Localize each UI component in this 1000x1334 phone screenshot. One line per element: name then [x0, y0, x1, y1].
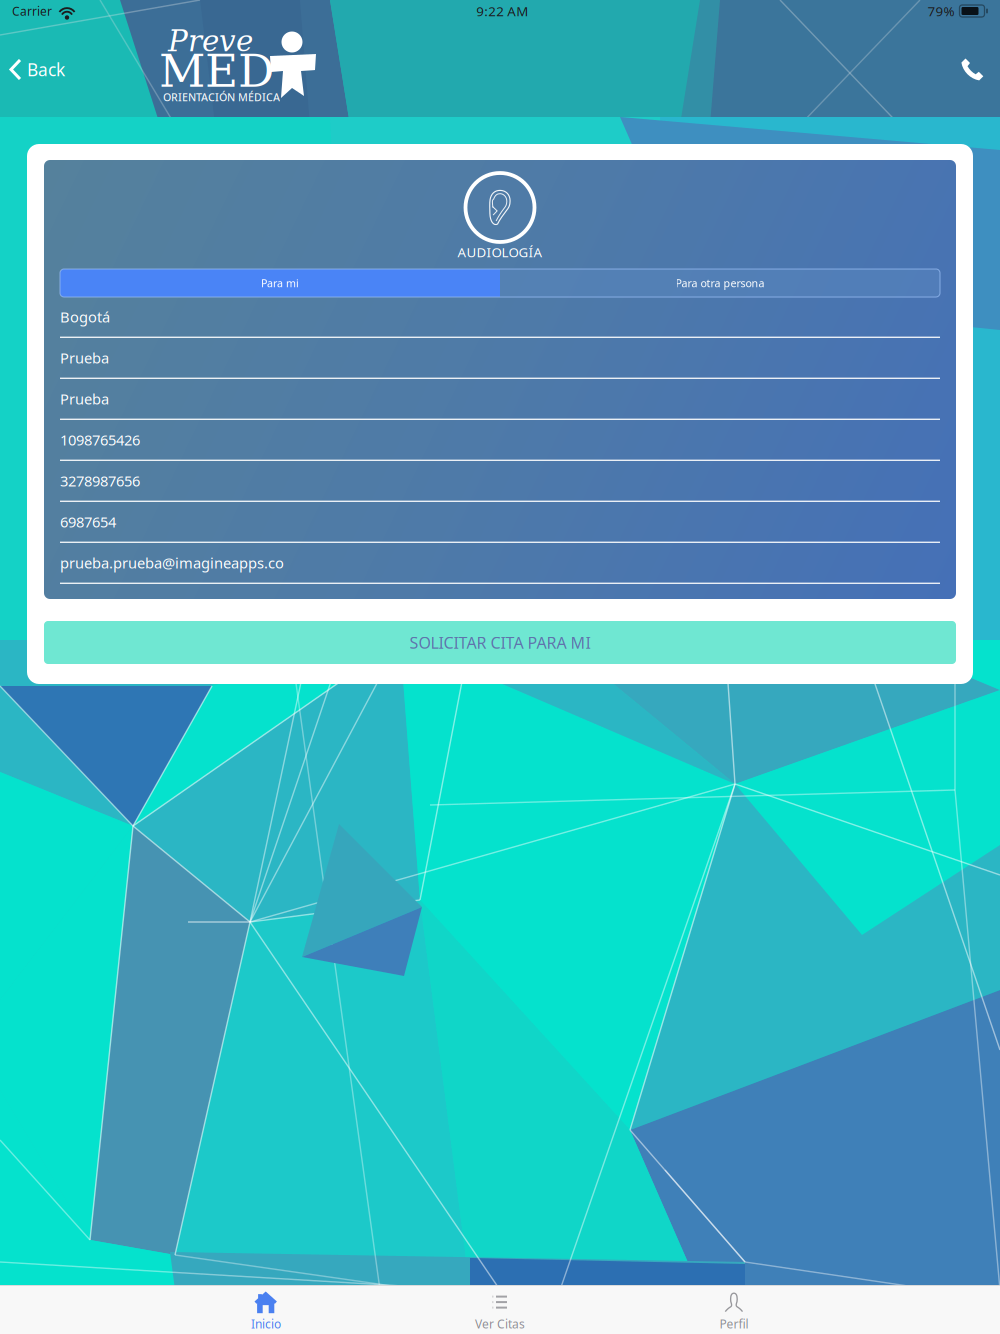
staticText: Bogotá: [60, 307, 110, 327]
staticText: AUDIOLOGÍA: [457, 243, 542, 261]
button[interactable]: Inicio: [149, 1286, 383, 1334]
button[interactable]: Llamar: [961, 22, 1000, 117]
button[interactable]: Ver Citas: [383, 1286, 617, 1334]
button[interactable]: Para otra persona: [500, 269, 940, 297]
staticText: Para mi: [261, 276, 299, 290]
button[interactable]: Perfil: [617, 1286, 851, 1334]
staticText: Para otra persona: [675, 276, 764, 290]
staticText: Ver Citas: [475, 1316, 525, 1332]
staticText: Back: [27, 58, 65, 81]
staticText: 6987654: [60, 512, 116, 532]
staticText: Inicio: [251, 1316, 281, 1332]
staticText: ORIENTACIÓN MÉDICA: [163, 90, 280, 104]
staticText: 1098765426: [60, 430, 140, 450]
staticText: prueba.prueba@imagineapps.co: [60, 553, 284, 573]
staticText: Prueba: [60, 348, 109, 368]
staticText: Perfil: [719, 1316, 748, 1332]
button[interactable]: Back: [0, 22, 81, 117]
staticText: MED: [159, 45, 274, 97]
staticText: Preve: [168, 24, 253, 58]
staticText: Prueba: [60, 389, 109, 409]
staticText: 79%: [927, 2, 954, 20]
button[interactable]: Para mi: [60, 269, 500, 297]
staticText: Carrier: [12, 3, 52, 19]
button[interactable]: SOLICITAR CITA PARA MI: [44, 621, 956, 664]
staticText: SOLICITAR CITA PARA MI: [409, 632, 590, 653]
staticText: 3278987656: [60, 471, 140, 491]
staticText: 9:22 AM: [476, 2, 528, 20]
